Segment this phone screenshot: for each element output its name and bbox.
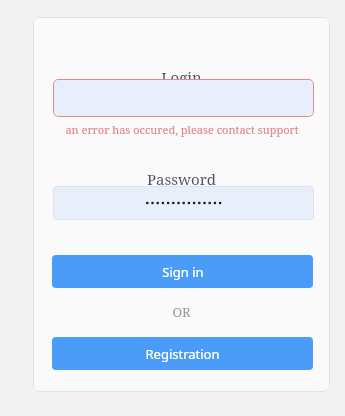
staticText: OR: [172, 303, 191, 321]
button[interactable]: [53, 186, 314, 220]
staticText: an error has occured, please contact sup…: [65, 122, 299, 137]
staticText: Sign in: [162, 263, 204, 281]
button[interactable]: [53, 79, 314, 117]
button[interactable]: Registration: [52, 337, 313, 370]
button[interactable]: Sign in: [52, 255, 313, 288]
staticText: Password: [147, 169, 216, 189]
staticText: Login: [161, 67, 202, 87]
staticText: Registration: [145, 345, 220, 363]
